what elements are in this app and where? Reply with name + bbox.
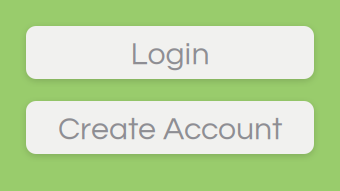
button[interactable]: Login xyxy=(26,26,314,79)
staticText: Login xyxy=(130,38,209,71)
button[interactable]: Create Account xyxy=(26,101,314,154)
staticText: Create Account xyxy=(58,113,282,146)
